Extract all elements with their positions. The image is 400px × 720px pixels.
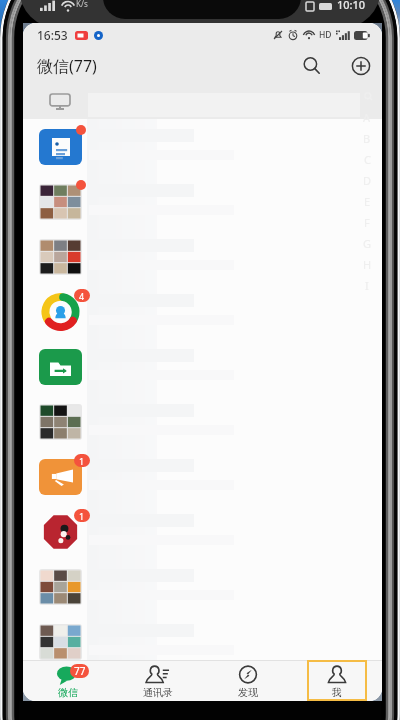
staticText: A — [363, 110, 371, 124]
staticText: 发现 — [238, 686, 258, 699]
button[interactable] — [23, 614, 382, 669]
staticText: 1 — [79, 510, 85, 522]
staticText: K/s — [76, 0, 88, 9]
button[interactable]: 77 — [23, 660, 113, 701]
button[interactable] — [23, 394, 382, 449]
staticText: H — [363, 257, 372, 271]
staticText: 我 — [332, 686, 342, 699]
staticText: HD — [319, 29, 332, 41]
staticText: D — [363, 173, 372, 187]
button[interactable]: Add — [344, 49, 378, 83]
button[interactable] — [23, 339, 382, 394]
button[interactable]: 1 — [23, 449, 382, 504]
staticText: 微信 — [58, 686, 78, 699]
staticText: I — [365, 278, 369, 292]
staticText: 77 — [74, 664, 86, 678]
button[interactable] — [23, 174, 382, 229]
button[interactable] — [23, 229, 382, 284]
button[interactable]: 通讯录 — [113, 660, 203, 701]
staticText: 4 — [79, 290, 85, 302]
staticText: C — [364, 152, 371, 166]
other: Windows WeChat logged in — [50, 94, 70, 110]
button[interactable] — [23, 119, 382, 174]
staticText: G — [363, 236, 372, 250]
staticText: E — [364, 194, 371, 208]
button[interactable]: 1 — [23, 504, 382, 559]
staticText: 1 — [79, 455, 85, 467]
button[interactable]: 发现 — [203, 660, 293, 701]
button[interactable]: 我 — [292, 660, 382, 701]
button[interactable]: Windows WeChat logged in — [23, 85, 382, 119]
staticText: 10:10 — [337, 0, 366, 12]
staticText: B — [363, 131, 371, 145]
staticText: 通讯录 — [143, 686, 173, 699]
button[interactable]: Search — [295, 49, 329, 83]
button[interactable]: 4 — [23, 284, 382, 339]
staticText: 16:53 — [37, 27, 68, 43]
staticText: 微信(77) — [37, 55, 97, 77]
staticText: F — [364, 215, 370, 229]
button[interactable] — [23, 559, 382, 614]
